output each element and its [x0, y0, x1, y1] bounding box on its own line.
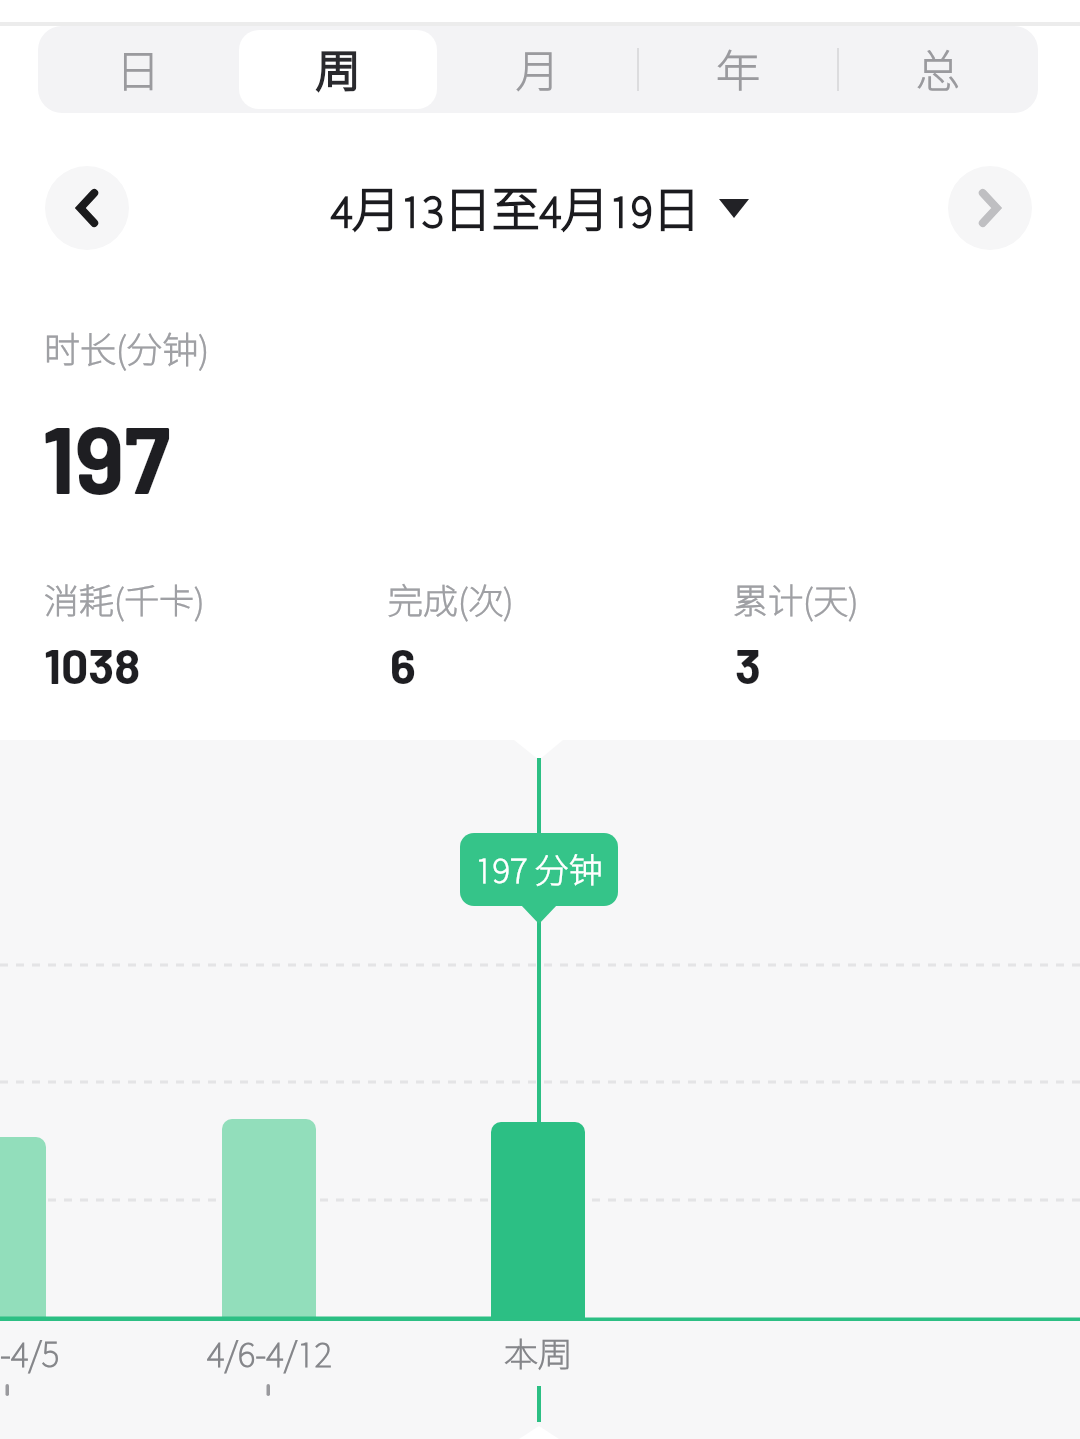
button[interactable]: 4/6-4/12 [194, 1332, 344, 1376]
button[interactable] [45, 166, 129, 250]
staticText: 4月13日至4月19日 [331, 180, 701, 237]
staticText: 4月13日至4月19日 [331, 180, 701, 237]
staticText: 197 分钟 [475, 850, 603, 890]
staticText: 累计(天) [733, 580, 859, 621]
button[interactable]: 本周 [463, 1332, 613, 1376]
staticText: 完成(次) [388, 580, 514, 621]
button[interactable]: 日 [38, 26, 238, 113]
staticText: -4/5 [0, 1334, 60, 1374]
button[interactable] [948, 166, 1032, 250]
button[interactable]: 4月13日至4月19日 [280, 166, 800, 250]
button[interactable]: 周 [238, 26, 438, 113]
staticText: 6 [390, 636, 416, 694]
button[interactable]: -4/5 [0, 1332, 110, 1376]
staticText: 本周 [504, 1334, 572, 1374]
staticText: 总 [916, 44, 960, 96]
staticText: 1038 [44, 636, 141, 694]
staticText: 消耗(千卡) [44, 580, 205, 621]
staticText: 4/6-4/12 [207, 1334, 332, 1374]
button[interactable]: 年 [638, 26, 838, 113]
button[interactable]: 总 [838, 26, 1038, 113]
staticText: 周 [316, 44, 360, 96]
staticText: 197 [42, 401, 171, 513]
staticText: 3 [735, 636, 761, 694]
staticText: 年 [716, 44, 760, 96]
staticText: 时长(分钟) [44, 328, 210, 370]
button[interactable]: 月 [438, 26, 638, 113]
staticText: 日 [116, 44, 160, 96]
staticText: 月 [516, 44, 560, 96]
staticText: 周 [316, 44, 360, 96]
